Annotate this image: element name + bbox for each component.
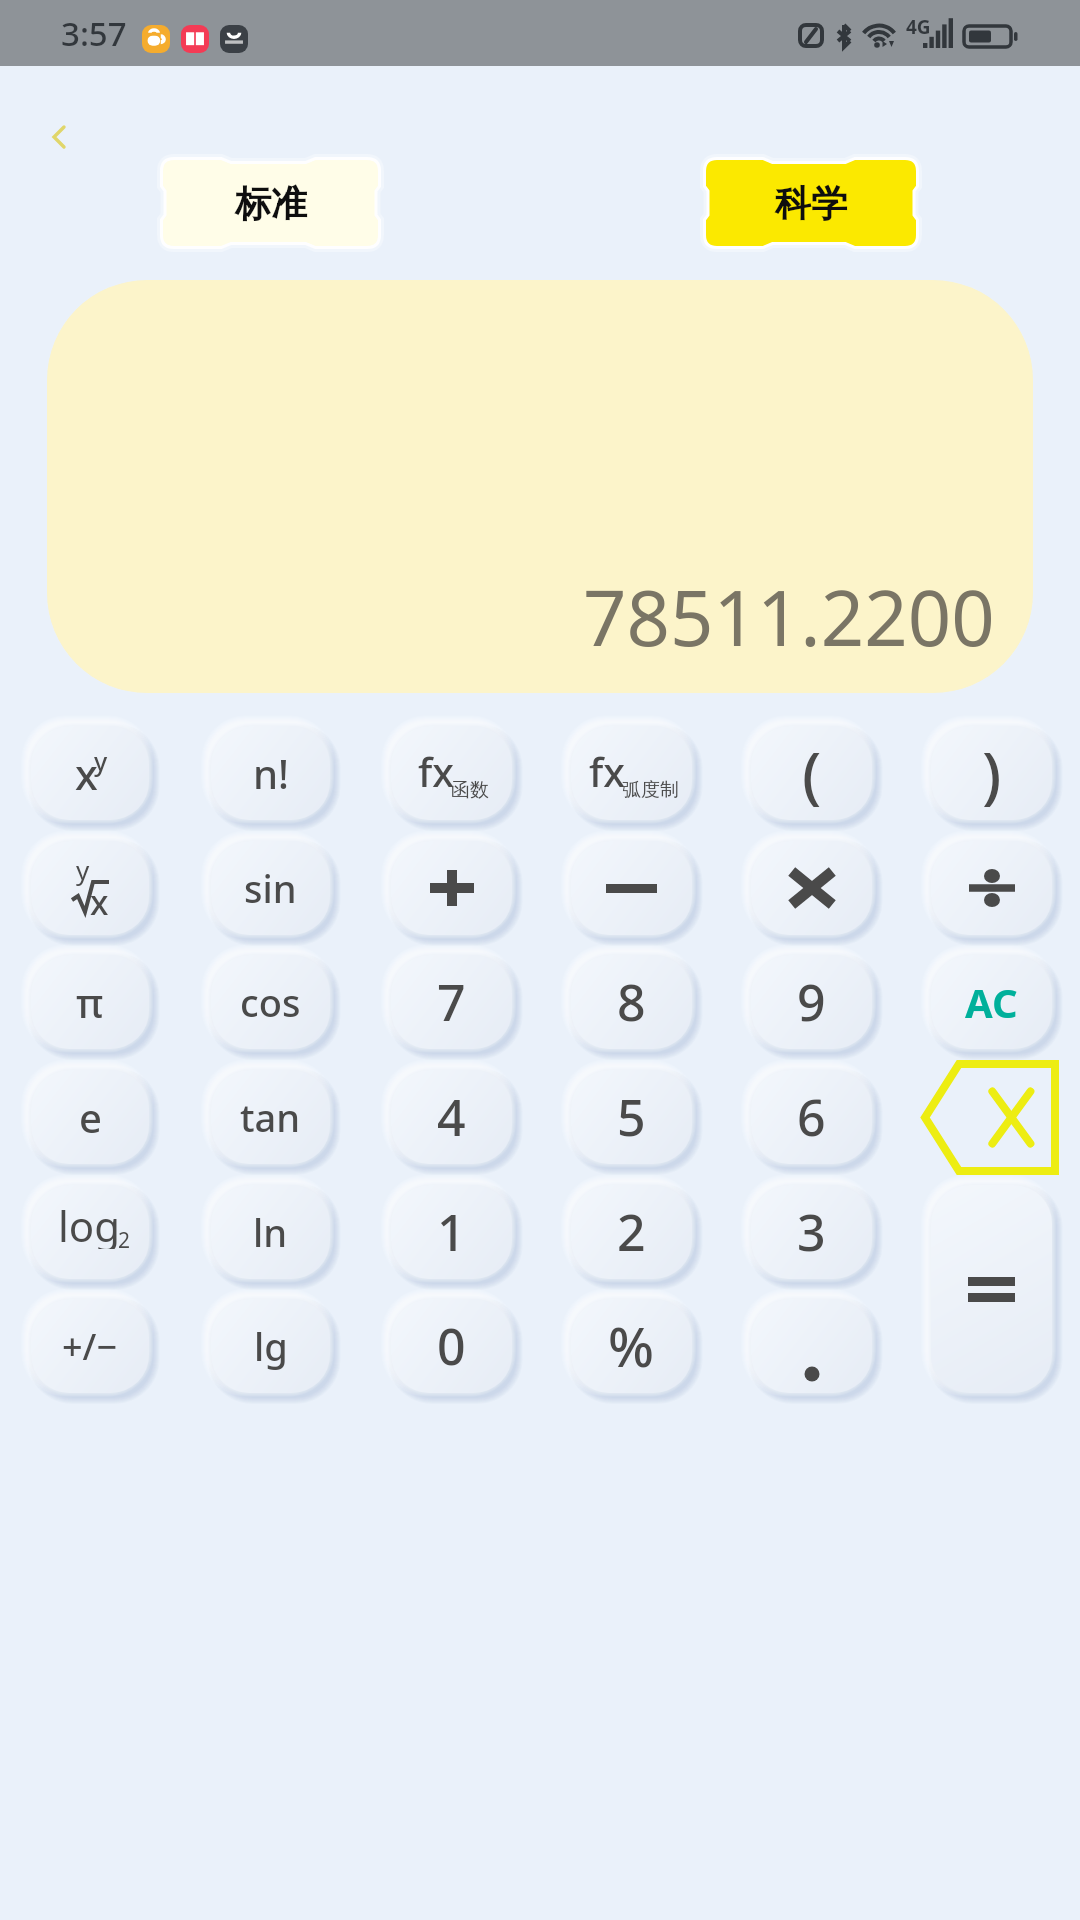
staticText: 4G [906,14,931,40]
button[interactable]: AC [931,955,1052,1049]
button[interactable]: Minus [571,841,692,935]
button[interactable]: Backspace [921,1060,1059,1175]
button[interactable]: 2 [571,1185,692,1279]
staticText: sin [244,862,297,914]
staticText: 8 [617,968,646,1036]
staticText: fx [589,744,625,798]
staticText: % [608,1309,655,1383]
staticText: 4 [437,1083,466,1151]
staticText: lg [254,1320,288,1372]
staticText: 6 [797,1083,826,1151]
button[interactable]: x [31,726,149,820]
staticText: x [90,879,109,925]
staticText: ( [802,731,822,815]
button[interactable]: Plus [391,841,512,935]
staticText: x [75,745,98,801]
staticText: 9 [797,968,826,1036]
staticText: log [58,1197,121,1249]
staticText: 函数 [451,778,489,802]
button[interactable]: Divide [931,841,1052,935]
button[interactable]: fx [391,726,512,820]
button[interactable]: 7 [391,955,512,1049]
staticText: 3 [797,1198,826,1266]
staticText: ) [982,731,1002,815]
button[interactable]: 1 [391,1185,512,1279]
button[interactable]: ( [751,726,872,820]
staticText: tan [240,1091,301,1143]
staticText: 弧度制 [622,778,679,802]
staticText: fx [418,744,454,798]
staticText: 2 [118,1226,131,1255]
button[interactable]: 8 [571,955,692,1049]
staticText: n! [253,746,289,800]
staticText: +/− [62,1322,118,1371]
button[interactable]: π [31,955,149,1049]
button[interactable]: 3 [751,1185,872,1279]
staticText: y [76,852,90,887]
button[interactable]: fx [571,726,692,820]
button[interactable]: log [31,1185,149,1279]
staticText: 标准 [235,181,307,226]
button[interactable]: ln [211,1185,330,1279]
button[interactable]: +/− [31,1299,149,1393]
button[interactable]: ) [931,726,1052,820]
button[interactable]: Nth root of x [31,841,149,935]
button[interactable]: n! [211,726,330,820]
button[interactable]: 0 [391,1299,512,1393]
staticText: 2 [617,1198,646,1266]
button[interactable]: lg [211,1299,330,1393]
staticText: 3:57 [61,11,127,56]
button[interactable]: 科学 [706,160,916,246]
button[interactable]: cos [211,955,330,1049]
staticText: 78511.2200 [583,565,995,669]
staticText: 0 [437,1312,466,1380]
button[interactable]: Multiply [751,841,872,935]
staticText: cos [240,976,301,1028]
staticText: 1 [437,1198,466,1266]
staticText: π [76,975,104,1029]
staticText: 5 [617,1083,646,1151]
button[interactable]: tan [211,1070,330,1164]
staticText: AC [965,975,1018,1029]
button[interactable]: 6 [751,1070,872,1164]
staticText: e [79,1090,102,1144]
button[interactable]: % [571,1299,692,1393]
staticText: y [94,744,108,778]
staticText: 科学 [775,181,847,226]
button[interactable]: Decimal point [751,1299,872,1393]
button[interactable]: sin [211,841,330,935]
button[interactable]: 标准 [163,160,378,246]
staticText: 7 [437,968,466,1036]
button[interactable]: 5 [571,1070,692,1164]
button[interactable]: 4 [391,1070,512,1164]
button[interactable]: Back [36,109,82,155]
staticText: ln [253,1206,288,1258]
button[interactable]: e [31,1070,149,1164]
button[interactable]: 9 [751,955,872,1049]
button[interactable]: Equals [931,1185,1052,1393]
